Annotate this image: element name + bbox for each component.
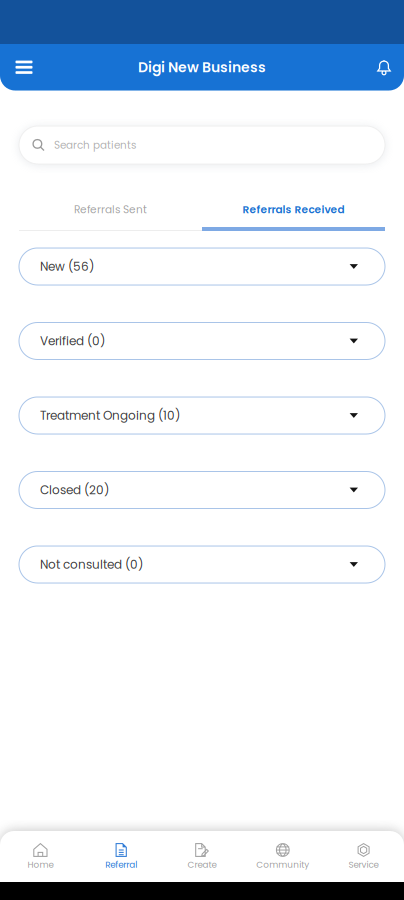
button[interactable]: Treatment Ongoing (10) xyxy=(19,397,385,434)
button[interactable]: Verified (0) xyxy=(19,322,385,359)
staticText: Home xyxy=(27,858,53,871)
staticText: Community xyxy=(256,858,309,871)
button[interactable]: New (56) xyxy=(19,248,385,285)
staticText: Closed (20) xyxy=(40,482,109,498)
staticText: Create xyxy=(187,858,216,871)
button[interactable]: Referrals Received xyxy=(202,191,385,231)
staticText: Referrals Sent xyxy=(74,202,147,217)
staticText: Verified (0) xyxy=(40,333,105,349)
button[interactable]: Not consulted (0) xyxy=(19,546,385,583)
button[interactable]: Notifications xyxy=(364,44,404,90)
staticText: Search patients xyxy=(54,138,136,152)
button[interactable]: Community xyxy=(242,831,323,882)
staticText: Service xyxy=(349,858,379,871)
staticText: Digi New Business xyxy=(138,57,266,77)
button[interactable]: Referral xyxy=(81,831,162,882)
button[interactable]: Menu xyxy=(0,44,48,90)
staticText: Not consulted (0) xyxy=(40,556,143,573)
staticText: Referrals Received xyxy=(242,202,344,217)
staticText: New (56) xyxy=(40,258,94,275)
button[interactable]: Create xyxy=(162,831,242,882)
button[interactable]: Closed (20) xyxy=(19,471,385,508)
button[interactable]: Home xyxy=(0,831,81,882)
button[interactable]: Service xyxy=(323,831,404,882)
button[interactable]: Referrals Sent xyxy=(19,191,202,231)
staticText: Referral xyxy=(105,858,137,871)
staticText: Treatment Ongoing (10) xyxy=(40,407,180,424)
